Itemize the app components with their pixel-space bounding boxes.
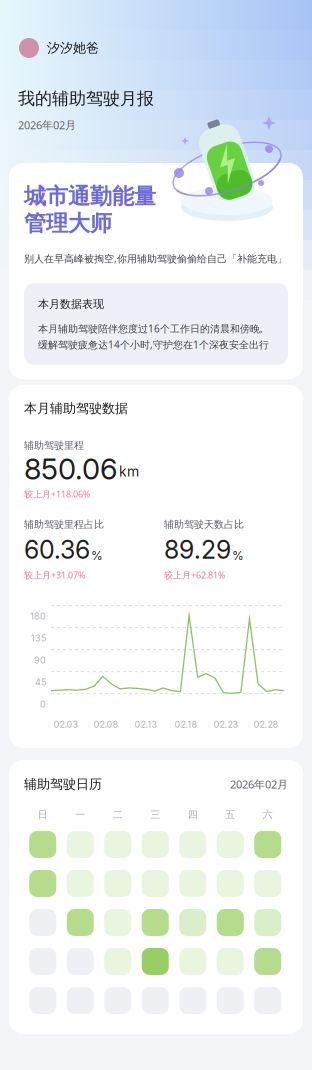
staticText: 四 xyxy=(188,808,198,821)
staticText: 辅助驾驶日历 xyxy=(24,776,102,792)
staticText: 850.06 xyxy=(24,451,118,487)
staticText: 02.03 xyxy=(53,719,78,730)
staticText: 135 xyxy=(31,633,46,644)
staticText: 本月辅助驾驶陪伴您度过16个工作日的清晨和傍晚, xyxy=(38,322,263,335)
staticText: 六 xyxy=(263,808,273,821)
staticText: 我的辅助驾驶月报 xyxy=(18,88,154,109)
staticText: 城市通勤能量 xyxy=(24,183,156,210)
staticText: 2026年02月 xyxy=(18,117,76,132)
staticText: 三 xyxy=(150,808,160,821)
staticText: 02.18 xyxy=(174,719,197,730)
staticText: % xyxy=(91,548,103,563)
staticText: 缓解驾驶疲惫达14个小时,守护您在1个深夜安全出行 xyxy=(38,338,269,351)
staticText: 02.23 xyxy=(213,719,238,730)
staticText: 2026年02月 xyxy=(230,777,288,792)
staticText: 五 xyxy=(225,808,235,821)
staticText: 60.36 xyxy=(24,535,90,565)
staticText: 0 xyxy=(40,699,46,710)
staticText: 180 xyxy=(30,611,46,622)
staticText: 辅助驾驶里程 xyxy=(24,439,84,452)
staticText: 二 xyxy=(113,808,123,821)
staticText: 89.29 xyxy=(164,535,231,565)
staticText: 别人在早高峰被掏空,你用辅助驾驶偷偷给自己「补能充电」 xyxy=(24,252,287,265)
staticText: 辅助驾驶天数占比 xyxy=(164,518,244,531)
staticText: 管理大师 xyxy=(24,210,112,237)
staticText: 02.28 xyxy=(253,719,278,730)
staticText: 本月数据表现 xyxy=(38,297,104,311)
staticText: 02.13 xyxy=(134,719,157,730)
staticText: 汐汐她爸 xyxy=(47,40,99,56)
staticText: 02.08 xyxy=(93,719,118,730)
staticText: 日 xyxy=(38,808,48,821)
staticText: 较上月+62.81% xyxy=(164,569,225,581)
staticText: 较上月+118.06% xyxy=(24,488,90,500)
staticText: 45 xyxy=(35,677,46,688)
button[interactable]: 汐汐她爸 xyxy=(0,38,312,58)
staticText: % xyxy=(232,548,244,563)
staticText: 一 xyxy=(75,808,85,821)
staticText: 90 xyxy=(34,655,46,666)
staticText: 辅助驾驶里程占比 xyxy=(24,518,104,531)
staticText: 较上月+31.07% xyxy=(24,569,85,581)
staticText: km xyxy=(119,463,139,480)
staticText: 本月辅助驾驶数据 xyxy=(24,400,128,417)
